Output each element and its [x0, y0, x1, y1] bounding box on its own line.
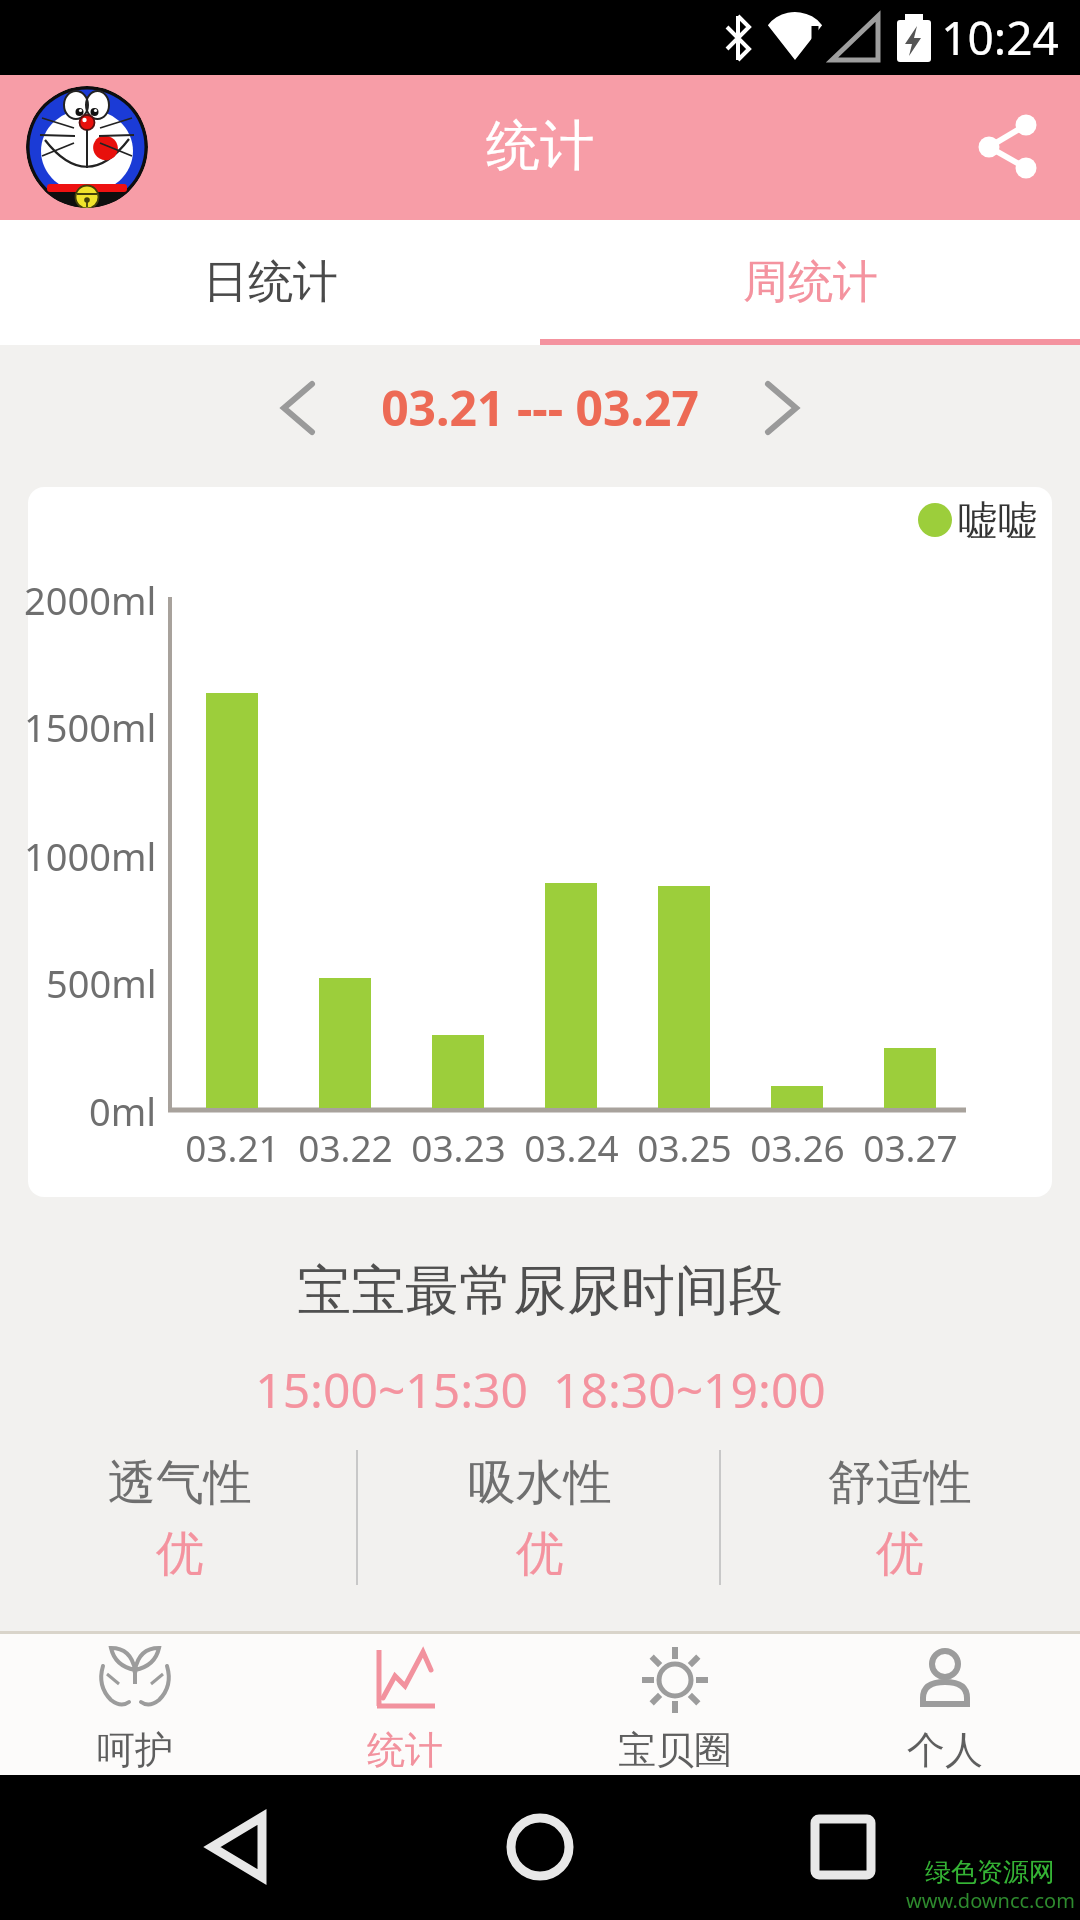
- staticText: 统计: [367, 1726, 443, 1774]
- staticText: 03.24: [524, 1122, 619, 1172]
- staticText: 优: [516, 1524, 564, 1584]
- staticText: 宝宝最常尿尿时间段: [297, 1257, 783, 1325]
- staticText: 03.21 --- 03.27: [381, 375, 699, 440]
- button[interactable]: [255, 368, 335, 448]
- button[interactable]: 宝贝圈: [540, 1634, 810, 1775]
- staticText: 03.27: [863, 1122, 958, 1172]
- button[interactable]: 呵护: [0, 1634, 270, 1775]
- staticText: 统计: [486, 112, 594, 180]
- button[interactable]: 周统计: [540, 220, 1080, 345]
- staticText: 舒适性: [828, 1453, 972, 1513]
- staticText: 03.26: [750, 1122, 845, 1172]
- staticText: www.downcc.com: [906, 1887, 1075, 1914]
- staticText: 透气性: [108, 1453, 252, 1513]
- staticText: 优: [876, 1524, 924, 1584]
- button[interactable]: [962, 98, 1062, 198]
- button[interactable]: [26, 86, 148, 208]
- staticText: 呵护: [97, 1726, 173, 1774]
- staticText: 03.21: [185, 1122, 280, 1172]
- button[interactable]: 统计: [270, 1634, 540, 1775]
- staticText: 03.23: [411, 1122, 506, 1172]
- staticText: 1500ml: [24, 701, 157, 753]
- staticText: 0ml: [89, 1085, 157, 1137]
- staticText: 绿色资源网: [925, 1856, 1055, 1889]
- staticText: 1000ml: [24, 830, 157, 882]
- staticText: 优: [156, 1524, 204, 1584]
- staticText: 日统计: [203, 254, 338, 311]
- button[interactable]: 日统计: [0, 220, 540, 345]
- staticText: 03.25: [637, 1122, 732, 1172]
- button[interactable]: [745, 368, 825, 448]
- staticText: 吸水性: [468, 1453, 612, 1513]
- staticText: 03.22: [298, 1122, 393, 1172]
- button[interactable]: 个人: [810, 1634, 1080, 1775]
- staticText: 2000ml: [24, 574, 157, 626]
- staticText: 周统计: [743, 254, 878, 311]
- staticText: 嘘嘘: [958, 495, 1038, 545]
- staticText: 15:00~15:30 18:30~19:00: [255, 1357, 826, 1422]
- staticText: 宝贝圈: [618, 1726, 732, 1774]
- staticText: 个人: [907, 1726, 983, 1774]
- staticText: 500ml: [46, 957, 157, 1009]
- staticText: 10:24: [941, 6, 1059, 69]
